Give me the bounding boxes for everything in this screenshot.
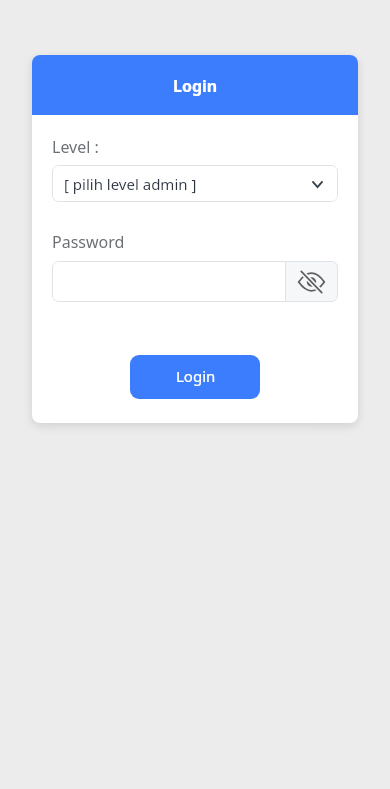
staticText: Login xyxy=(176,366,216,386)
staticText: Login xyxy=(173,75,218,97)
button[interactable]: Password input xyxy=(52,261,285,302)
staticText: Password xyxy=(52,231,125,253)
button[interactable]: [ pilih level admin ] xyxy=(52,165,338,202)
staticText: [ pilih level admin ] xyxy=(64,174,197,194)
staticText: Level : xyxy=(52,136,99,158)
button[interactable]: Login xyxy=(130,355,260,399)
button[interactable]: Show password xyxy=(285,261,338,302)
